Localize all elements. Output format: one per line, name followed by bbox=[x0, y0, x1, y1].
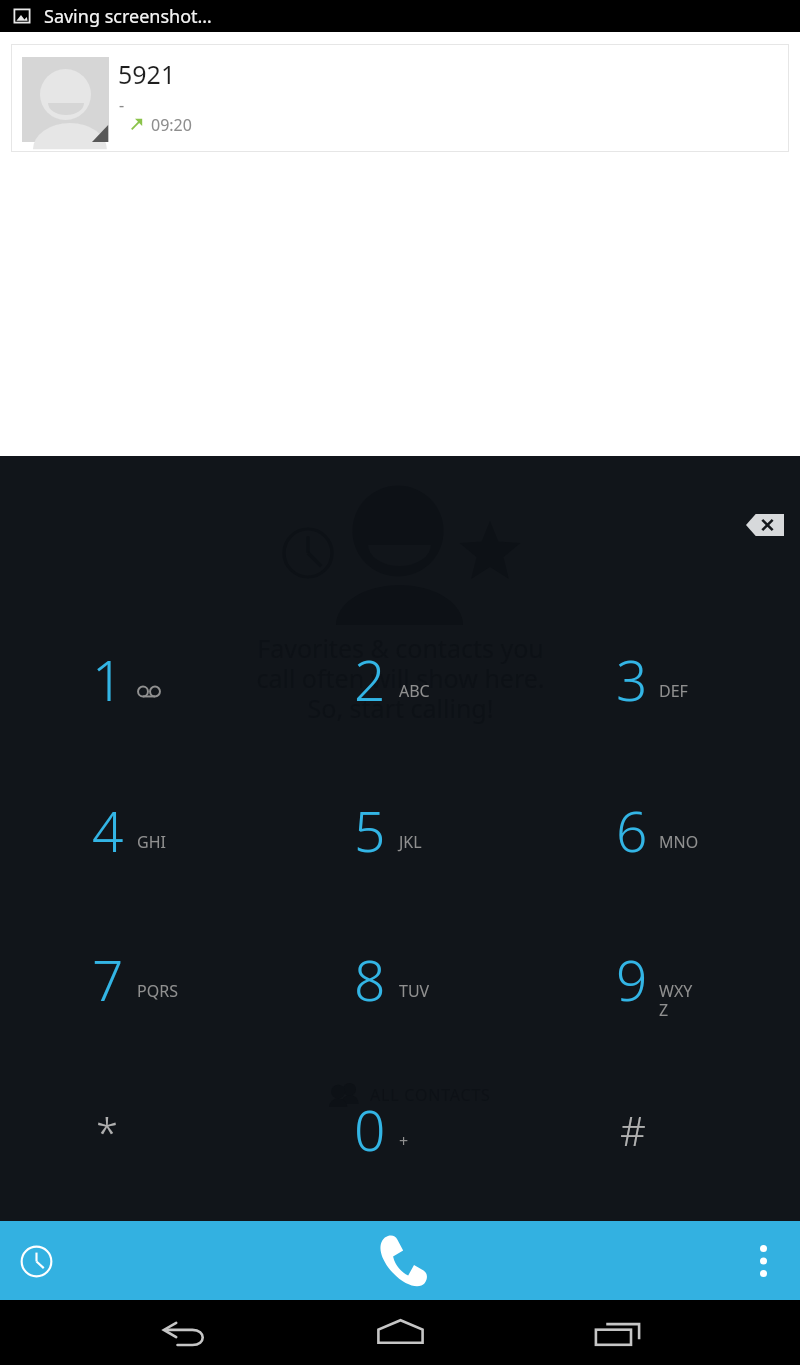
staticText: ABC bbox=[399, 680, 449, 702]
staticText: JKL bbox=[399, 831, 449, 853]
button[interactable]: # bbox=[534, 1034, 800, 1182]
staticText: # bbox=[620, 1103, 646, 1157]
button[interactable]: Call history bbox=[4, 1229, 68, 1293]
staticText: + bbox=[399, 1130, 449, 1152]
staticText: * bbox=[96, 1105, 119, 1159]
staticText: 2 bbox=[354, 642, 386, 717]
button[interactable]: 7 bbox=[0, 884, 267, 1032]
button[interactable]: 0 bbox=[267, 1034, 534, 1182]
staticText: 0 bbox=[354, 1092, 386, 1167]
button[interactable]: 5921 bbox=[11, 44, 789, 152]
staticText: - bbox=[119, 94, 125, 116]
button[interactable]: Home bbox=[345, 1300, 455, 1365]
staticText: Favorites & contacts you call often will… bbox=[256, 631, 545, 725]
staticText: WXYZ bbox=[659, 980, 697, 1021]
staticText: Saving screenshot… bbox=[44, 4, 212, 29]
staticText: GHI bbox=[137, 831, 187, 853]
staticText: 3 bbox=[616, 642, 648, 717]
button[interactable]: Recent apps bbox=[562, 1300, 672, 1365]
button[interactable]: 4 bbox=[0, 735, 267, 883]
button[interactable]: 3 bbox=[534, 584, 800, 732]
button[interactable]: 1 bbox=[0, 584, 267, 732]
staticText: 09:20 bbox=[151, 114, 192, 136]
button[interactable]: 8 bbox=[267, 884, 534, 1032]
staticText: PQRS bbox=[137, 980, 187, 1002]
button[interactable]: * bbox=[0, 1034, 267, 1182]
button[interactable]: More options bbox=[726, 1222, 800, 1300]
staticText: DEF bbox=[659, 680, 709, 702]
button[interactable]: 6 bbox=[534, 735, 800, 883]
button[interactable]: 9 bbox=[534, 884, 800, 1032]
staticText: 4 bbox=[92, 793, 124, 868]
staticText: 9 bbox=[616, 942, 648, 1017]
staticText: MNO bbox=[659, 831, 709, 853]
button[interactable]: Dialpad bbox=[352, 1222, 448, 1300]
button[interactable]: 2 bbox=[267, 584, 534, 732]
staticText: 6 bbox=[616, 793, 648, 868]
staticText: 1 bbox=[92, 642, 124, 717]
staticText: 5 bbox=[354, 793, 386, 868]
button[interactable]: 5 bbox=[267, 735, 534, 883]
staticText: 8 bbox=[354, 942, 386, 1017]
button[interactable]: Backspace bbox=[727, 498, 800, 552]
staticText: 5921 bbox=[118, 57, 176, 91]
button[interactable]: Back bbox=[130, 1300, 240, 1365]
staticText: TUV bbox=[399, 980, 449, 1002]
staticText: 7 bbox=[92, 942, 124, 1017]
